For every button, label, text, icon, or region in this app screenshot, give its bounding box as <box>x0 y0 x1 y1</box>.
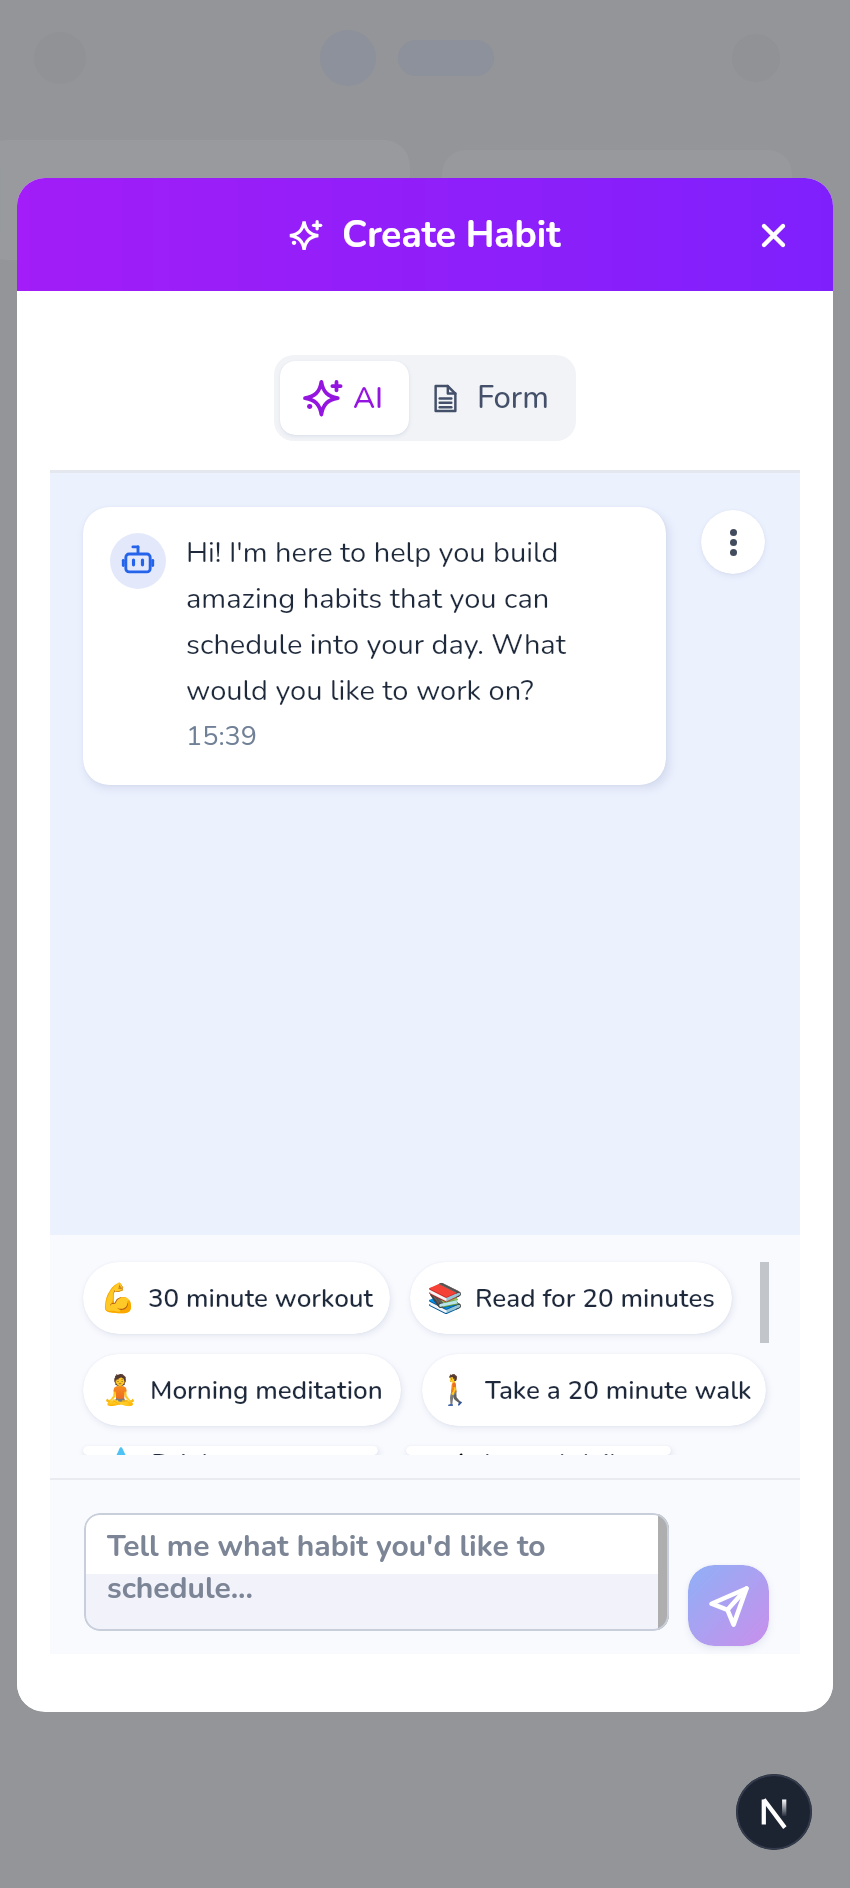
button[interactable]: Close <box>749 211 797 259</box>
staticText: Form <box>477 377 549 419</box>
staticText: 30 minute workout <box>148 1281 374 1316</box>
staticText: 15:39 <box>186 718 257 755</box>
staticText: Read for 20 minutes <box>475 1281 715 1316</box>
button[interactable]: 💪 <box>83 1262 390 1334</box>
button[interactable]: Form <box>409 361 570 435</box>
staticText: Morning meditation <box>150 1373 383 1408</box>
button[interactable]: 🧘 <box>83 1354 401 1426</box>
button[interactable]: More options <box>701 510 765 574</box>
staticText: 💪 <box>100 1281 137 1315</box>
button[interactable]: Tell me what habit you'd like to schedul… <box>84 1513 669 1631</box>
staticText: 💧 <box>103 1446 140 1455</box>
staticText: Drink more water <box>151 1446 359 1455</box>
staticText: AI <box>353 378 384 419</box>
button[interactable]: Next.js dev tools <box>736 1774 812 1850</box>
staticText: ✍️ <box>446 1446 471 1455</box>
staticText: Journal daily <box>482 1446 631 1455</box>
button[interactable]: 📚 <box>410 1262 732 1334</box>
button[interactable]: AI <box>280 361 409 435</box>
button[interactable]: 🚶 <box>422 1354 766 1426</box>
button[interactable]: Send <box>688 1565 769 1646</box>
button[interactable]: 💧 <box>83 1446 378 1455</box>
staticText: 🧘 <box>102 1373 139 1407</box>
staticText: Tell me what habit you'd like to schedul… <box>107 1526 669 1609</box>
staticText: Hi! I'm here to help you build amazing h… <box>186 533 644 710</box>
button[interactable]: ✍️ <box>406 1446 671 1455</box>
staticText: Create Habit <box>342 210 561 260</box>
staticText: Take a 20 minute walk <box>485 1373 752 1408</box>
staticText: 📚 <box>427 1281 464 1315</box>
staticText: 🚶 <box>437 1373 474 1407</box>
